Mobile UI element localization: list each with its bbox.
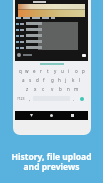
- button[interactable]: y: [52, 68, 58, 74]
- staticText: d: [36, 77, 39, 83]
- staticText: s: [29, 77, 32, 83]
- button[interactable]: v: [49, 86, 55, 92]
- staticText: f: [43, 77, 45, 83]
- button[interactable]: h: [56, 77, 62, 83]
- staticText: History, file upload and previews: [0, 151, 103, 173]
- staticText: k: [72, 77, 75, 83]
- staticText: ,: [29, 96, 31, 102]
- button[interactable]: l: [77, 77, 83, 83]
- staticText: l: [79, 77, 81, 83]
- button[interactable]: r: [38, 68, 44, 74]
- staticText: a: [22, 77, 25, 83]
- staticText: o: [75, 68, 78, 74]
- button[interactable]: n: [65, 86, 71, 92]
- button[interactable]: z: [24, 86, 30, 92]
- staticText: y: [54, 68, 57, 74]
- staticText: m: [74, 86, 79, 92]
- button[interactable]: x: [32, 86, 38, 92]
- button[interactable]: .: [70, 95, 77, 102]
- staticText: u: [61, 68, 64, 74]
- staticText: v: [51, 86, 54, 92]
- button[interactable]: w: [24, 68, 30, 74]
- staticText: ?123: [17, 96, 25, 101]
- button[interactable]: q: [17, 68, 23, 74]
- button[interactable]: Send: [82, 54, 86, 57]
- staticText: z: [26, 86, 29, 92]
- staticText: n: [67, 86, 70, 92]
- staticText: e: [33, 68, 36, 74]
- button[interactable]: u: [59, 68, 65, 74]
- button[interactable]: g: [49, 77, 55, 83]
- button[interactable]: j: [63, 77, 69, 83]
- button[interactable]: a: [20, 77, 26, 83]
- staticText: b: [59, 86, 62, 92]
- staticText: c: [42, 86, 45, 92]
- button[interactable]: b: [57, 86, 63, 92]
- button[interactable]: f: [41, 77, 47, 83]
- button[interactable]: c: [40, 86, 46, 92]
- staticText: j: [65, 77, 67, 83]
- button[interactable]: ?123: [16, 95, 26, 102]
- staticText: t: [47, 68, 49, 74]
- staticText: r: [40, 68, 42, 74]
- button[interactable]: Attach file: [17, 53, 21, 57]
- staticText: q: [19, 68, 22, 74]
- staticText: w: [25, 68, 29, 74]
- staticText: x: [34, 86, 37, 92]
- staticText: .: [73, 96, 75, 102]
- button[interactable]: ,: [26, 95, 33, 102]
- button[interactable]: i: [66, 68, 72, 74]
- button[interactable]: d: [34, 77, 40, 83]
- button[interactable]: Home: [47, 111, 56, 120]
- button[interactable]: m: [73, 86, 79, 92]
- staticText: p: [82, 68, 85, 74]
- staticText: h: [58, 77, 61, 83]
- button[interactable]: s: [27, 77, 33, 83]
- button[interactable]: k: [70, 77, 76, 83]
- staticText: g: [51, 77, 54, 83]
- button[interactable]: Enter: [77, 95, 87, 102]
- button[interactable]: p: [80, 68, 86, 74]
- button[interactable]: e: [31, 68, 37, 74]
- button[interactable]: o: [73, 68, 79, 74]
- staticText: i: [68, 68, 70, 74]
- button[interactable]: Recent apps: [68, 111, 77, 120]
- button[interactable]: Attach file: [15, 50, 88, 61]
- button[interactable]: Back: [27, 111, 36, 120]
- button[interactable]: t: [45, 68, 51, 74]
